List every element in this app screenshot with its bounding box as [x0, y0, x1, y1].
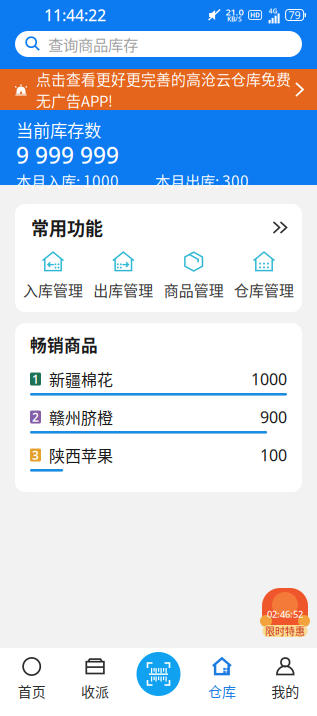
staticText: 常用功能 [31, 214, 103, 241]
staticText: 本月出库: 300 [155, 169, 249, 192]
staticText: KB/S [227, 15, 242, 23]
button[interactable]: 查询商品库存 [0, 30, 317, 57]
staticText: 9 999 999 [16, 140, 119, 170]
button[interactable]: 仓库 [190, 648, 254, 716]
button[interactable]: 收派 [63, 648, 127, 716]
staticText: 4G [269, 7, 278, 15]
staticText: 畅销商品 [30, 332, 98, 356]
button[interactable]: 入库管理 [19, 251, 87, 301]
staticText: 新疆棉花 [49, 367, 113, 391]
staticText: 商品管理 [164, 279, 224, 301]
staticText: 2 [32, 409, 39, 425]
button[interactable]: 我的 [254, 648, 317, 716]
staticText: 79 [289, 8, 301, 22]
button[interactable]: 扫一扫 [0, 652, 317, 696]
staticText: 仓库 [208, 681, 236, 701]
staticText: 我的 [271, 681, 299, 701]
button[interactable]: 限时特惠 [260, 588, 310, 638]
staticText: 02:46:52 [267, 608, 303, 620]
staticText: 陕西苹果 [49, 443, 113, 467]
staticText: 100 [260, 444, 287, 466]
staticText: 21.0 [226, 6, 244, 18]
staticText: HD [250, 11, 260, 19]
staticText: 仓库管理 [234, 279, 294, 301]
staticText: 11:44:22 [44, 4, 106, 26]
button[interactable]: 更多 [272, 220, 288, 234]
button[interactable]: 点击查看更好更完善的高沧云仓库免费无广告APP! [0, 69, 317, 110]
staticText: 首页 [18, 681, 46, 701]
staticText: 1000 [251, 368, 287, 390]
button[interactable]: 首页 [0, 648, 63, 716]
staticText: 当前库存数 [16, 117, 101, 142]
staticText: 本月入库: 1000 [16, 169, 119, 192]
staticText: 入库管理 [23, 279, 83, 301]
button[interactable]: 商品管理 [160, 251, 228, 301]
staticText: 3 [32, 447, 39, 463]
staticText: 点击查看更好更完善的高沧云仓库免费无广告APP! [36, 68, 291, 111]
staticText: 1 [32, 371, 39, 387]
staticText: 赣州脐橙 [49, 405, 113, 429]
staticText: 查询商品库存 [48, 33, 138, 55]
button[interactable]: 仓库管理 [230, 251, 298, 301]
staticText: 900 [260, 406, 287, 428]
staticText: 收派 [81, 681, 109, 701]
button[interactable]: 出库管理 [89, 251, 157, 301]
staticText: 限时特惠 [265, 624, 305, 638]
staticText: 出库管理 [93, 279, 153, 301]
